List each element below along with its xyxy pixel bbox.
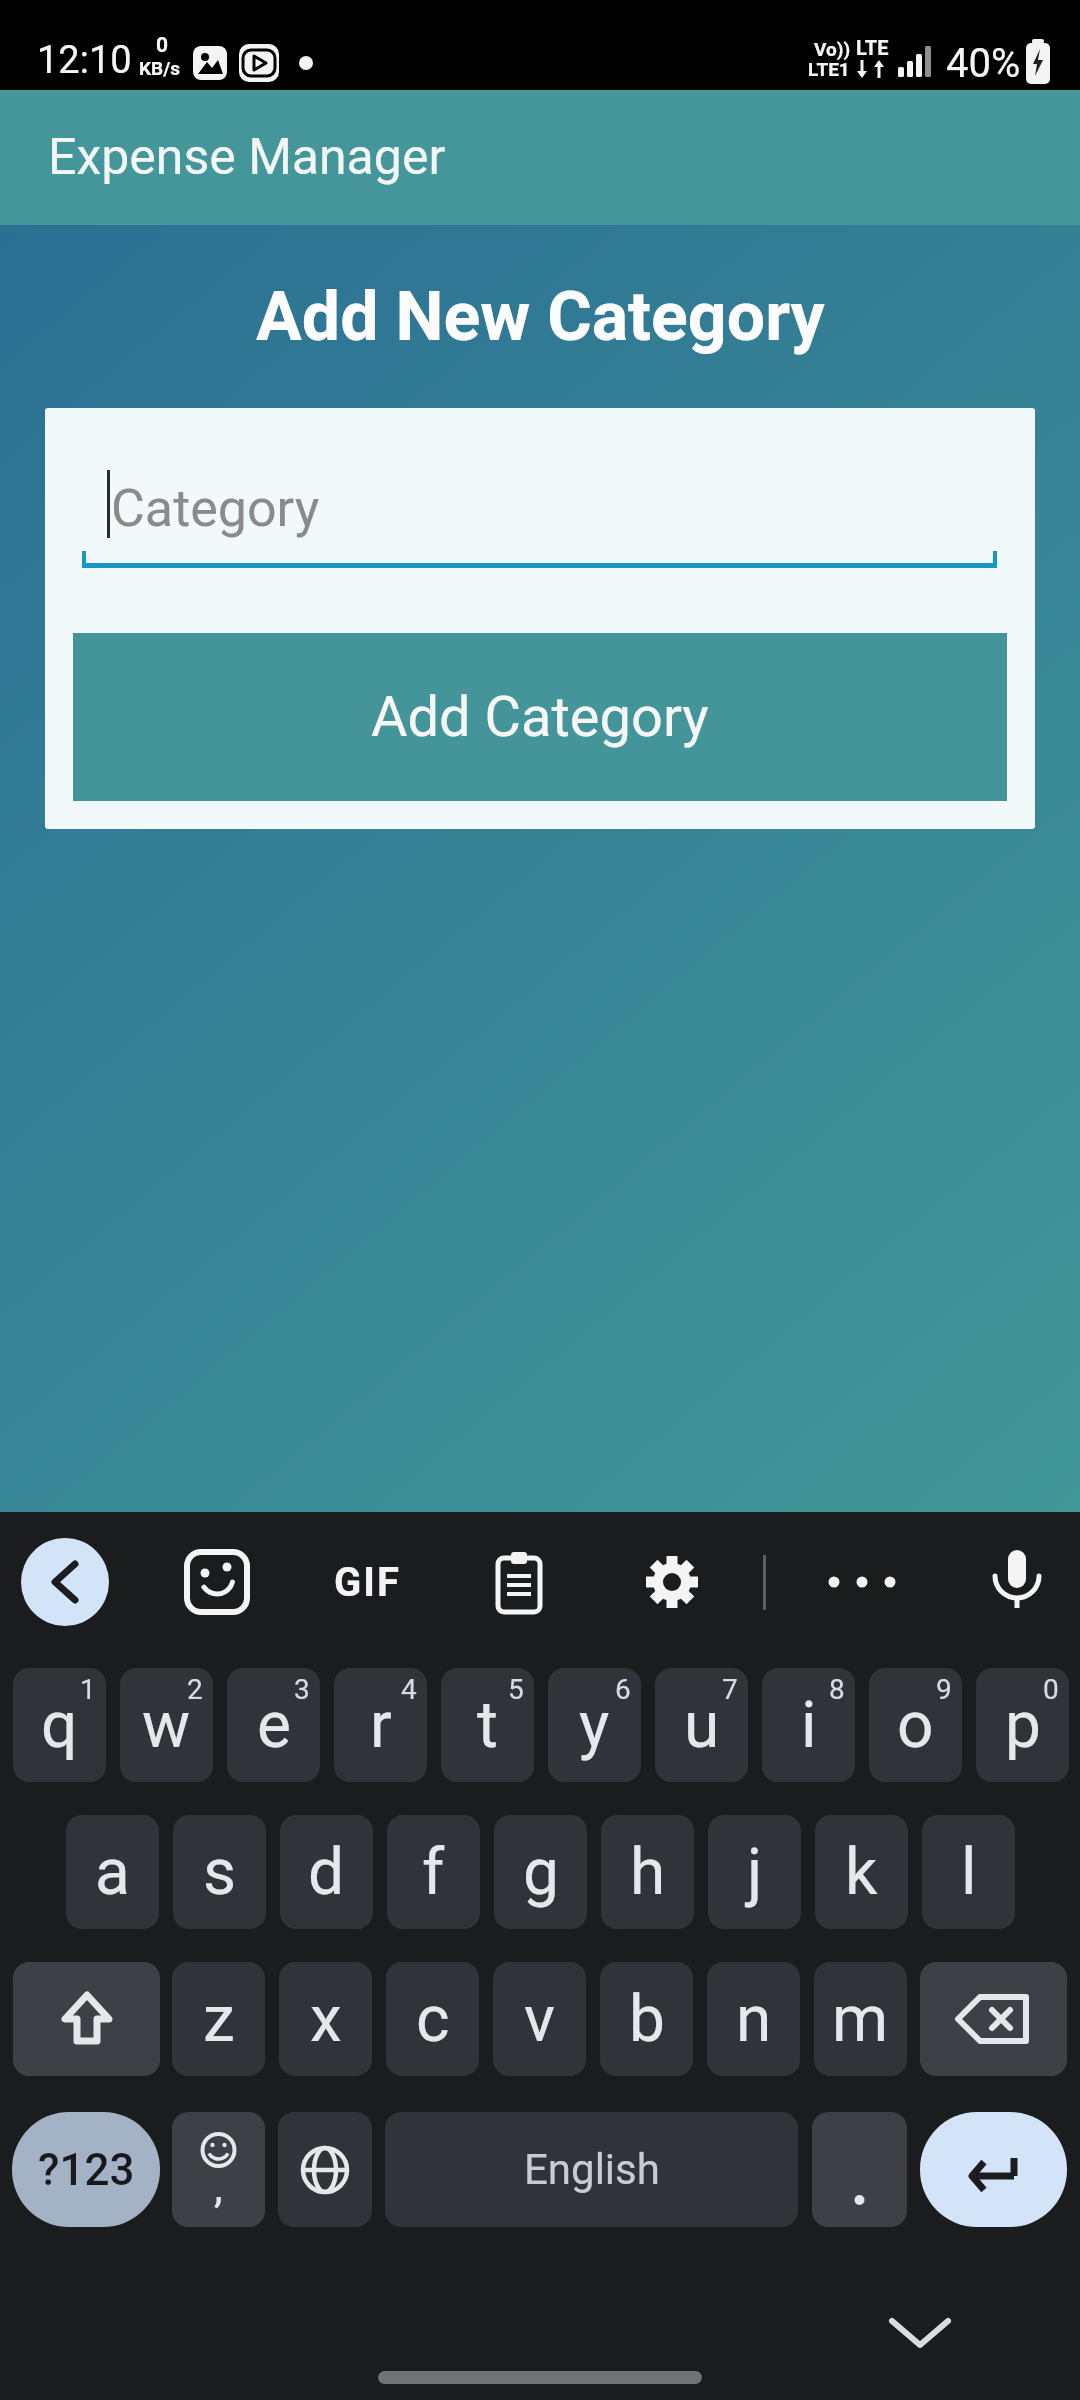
- staticText: Add Category: [371, 684, 709, 750]
- staticText: d: [308, 1835, 345, 1910]
- staticText: h: [630, 1835, 666, 1910]
- staticText: e: [257, 1688, 291, 1763]
- staticText: 40%: [946, 40, 1021, 87]
- staticText: 3: [294, 1673, 310, 1706]
- staticText: 8: [829, 1673, 845, 1706]
- button[interactable]: ?123: [12, 2112, 160, 2227]
- staticText: z: [203, 1982, 235, 2057]
- staticText: r: [370, 1688, 392, 1763]
- staticText: 12:10: [37, 38, 132, 83]
- staticText: y: [579, 1688, 610, 1763]
- button[interactable]: m: [814, 1962, 907, 2076]
- staticText: 4: [401, 1673, 417, 1706]
- button[interactable]: [278, 2112, 372, 2227]
- button[interactable]: y: [548, 1668, 641, 1782]
- button[interactable]: e: [227, 1668, 320, 1782]
- staticText: ,: [214, 2161, 223, 2213]
- staticText: Category: [111, 478, 320, 539]
- button[interactable]: ,: [172, 2112, 265, 2227]
- staticText: LTE1: [808, 58, 850, 80]
- button[interactable]: h: [601, 1815, 694, 1929]
- staticText: 0: [1043, 1673, 1059, 1706]
- button[interactable]: w: [120, 1668, 213, 1782]
- staticText: i: [801, 1688, 817, 1763]
- staticText: g: [523, 1835, 559, 1910]
- staticText: p: [1005, 1688, 1041, 1763]
- staticText: n: [736, 1982, 772, 2057]
- button[interactable]: g: [494, 1815, 587, 1929]
- staticText: o: [897, 1688, 934, 1763]
- staticText: t: [477, 1688, 498, 1763]
- staticText: w: [142, 1688, 191, 1763]
- button[interactable]: [920, 1962, 1067, 2076]
- button[interactable]: t: [441, 1668, 534, 1782]
- staticText: Expense Manager: [48, 128, 446, 187]
- staticText: v: [524, 1982, 555, 2057]
- button[interactable]: p: [976, 1668, 1069, 1782]
- button[interactable]: [185, 1550, 249, 1614]
- staticText: 1: [80, 1673, 96, 1706]
- staticText: GIF: [334, 1559, 401, 1606]
- button[interactable]: [13, 1962, 160, 2076]
- staticText: a: [95, 1835, 130, 1910]
- staticText: ?123: [38, 2144, 135, 2196]
- button[interactable]: r: [334, 1668, 427, 1782]
- button[interactable]: j: [708, 1815, 801, 1929]
- button[interactable]: b: [600, 1962, 693, 2076]
- staticText: q: [41, 1688, 78, 1763]
- staticText: 9: [936, 1673, 952, 1706]
- button[interactable]: [21, 1538, 109, 1626]
- staticText: 2: [187, 1673, 203, 1706]
- button[interactable]: f: [387, 1815, 480, 1929]
- button[interactable]: z: [172, 1962, 265, 2076]
- button[interactable]: [812, 2112, 907, 2227]
- staticText: k: [845, 1835, 878, 1910]
- staticText: 5: [508, 1673, 524, 1706]
- button[interactable]: q: [13, 1668, 106, 1782]
- button[interactable]: d: [280, 1815, 373, 1929]
- staticText: s: [203, 1835, 237, 1910]
- staticText: j: [747, 1835, 763, 1910]
- button[interactable]: [888, 2315, 952, 2351]
- staticText: m: [832, 1982, 889, 2057]
- staticText: LTE: [856, 36, 889, 59]
- button[interactable]: [640, 1550, 704, 1614]
- button[interactable]: x: [279, 1962, 372, 2076]
- button[interactable]: GIF: [318, 1556, 416, 1608]
- staticText: x: [310, 1982, 342, 2057]
- button[interactable]: [489, 1552, 549, 1614]
- staticText: 6: [615, 1673, 631, 1706]
- staticText: KB/s: [139, 57, 181, 79]
- staticText: b: [629, 1982, 665, 2057]
- staticText: c: [416, 1982, 450, 2057]
- button[interactable]: a: [66, 1815, 159, 1929]
- button[interactable]: n: [707, 1962, 800, 2076]
- staticText: English: [524, 2145, 660, 2194]
- button[interactable]: [820, 1572, 904, 1592]
- staticText: l: [961, 1835, 977, 1910]
- staticText: Vo)): [814, 38, 851, 60]
- button[interactable]: l: [922, 1815, 1015, 1929]
- button[interactable]: Add Category: [73, 633, 1007, 801]
- button[interactable]: English: [385, 2112, 798, 2227]
- button[interactable]: v: [493, 1962, 586, 2076]
- staticText: 0: [156, 33, 169, 58]
- button[interactable]: i: [762, 1668, 855, 1782]
- button[interactable]: [920, 2112, 1067, 2227]
- staticText: u: [684, 1688, 720, 1763]
- staticText: 7: [722, 1673, 738, 1706]
- button[interactable]: s: [173, 1815, 266, 1929]
- button[interactable]: o: [869, 1668, 962, 1782]
- staticText: Add New Category: [256, 277, 825, 357]
- button[interactable]: [985, 1550, 1049, 1614]
- button[interactable]: u: [655, 1668, 748, 1782]
- staticText: f: [422, 1835, 445, 1910]
- button[interactable]: k: [815, 1815, 908, 1929]
- button[interactable]: c: [386, 1962, 479, 2076]
